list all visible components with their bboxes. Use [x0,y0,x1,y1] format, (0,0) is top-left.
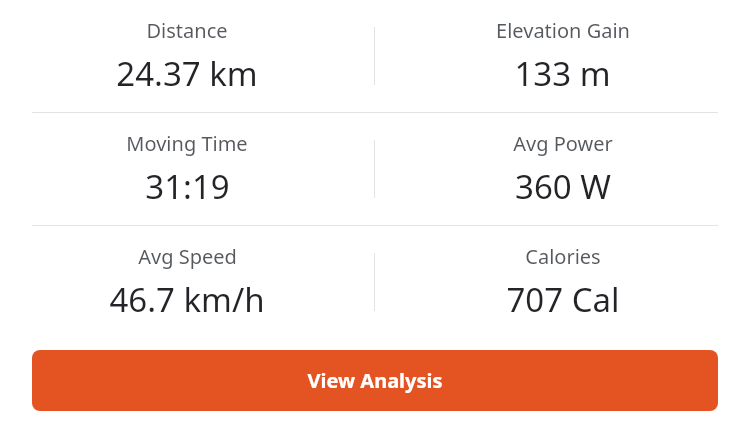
staticText: View Analysis [307,367,443,394]
staticText: Avg Speed [138,243,237,270]
staticText: 24.37 km [116,51,258,96]
button[interactable]: Calories [375,226,750,338]
button[interactable]: View Analysis [32,350,718,411]
staticText: 133 m [514,51,611,96]
staticText: 707 Cal [506,277,620,322]
staticText: Elevation Gain [496,17,630,44]
staticText: 360 W [515,164,611,209]
button[interactable]: Avg Speed [0,226,374,338]
button[interactable]: Avg Power [375,113,750,225]
staticText: Calories [525,243,601,270]
staticText: Moving Time [126,130,248,157]
staticText: 31:19 [145,164,230,209]
button[interactable]: Distance [0,0,374,112]
staticText: Distance [146,17,228,44]
staticText: 46.7 km/h [109,277,265,322]
button[interactable]: Elevation Gain [375,0,750,112]
button[interactable]: Moving Time [0,113,374,225]
staticText: Avg Power [513,130,613,157]
